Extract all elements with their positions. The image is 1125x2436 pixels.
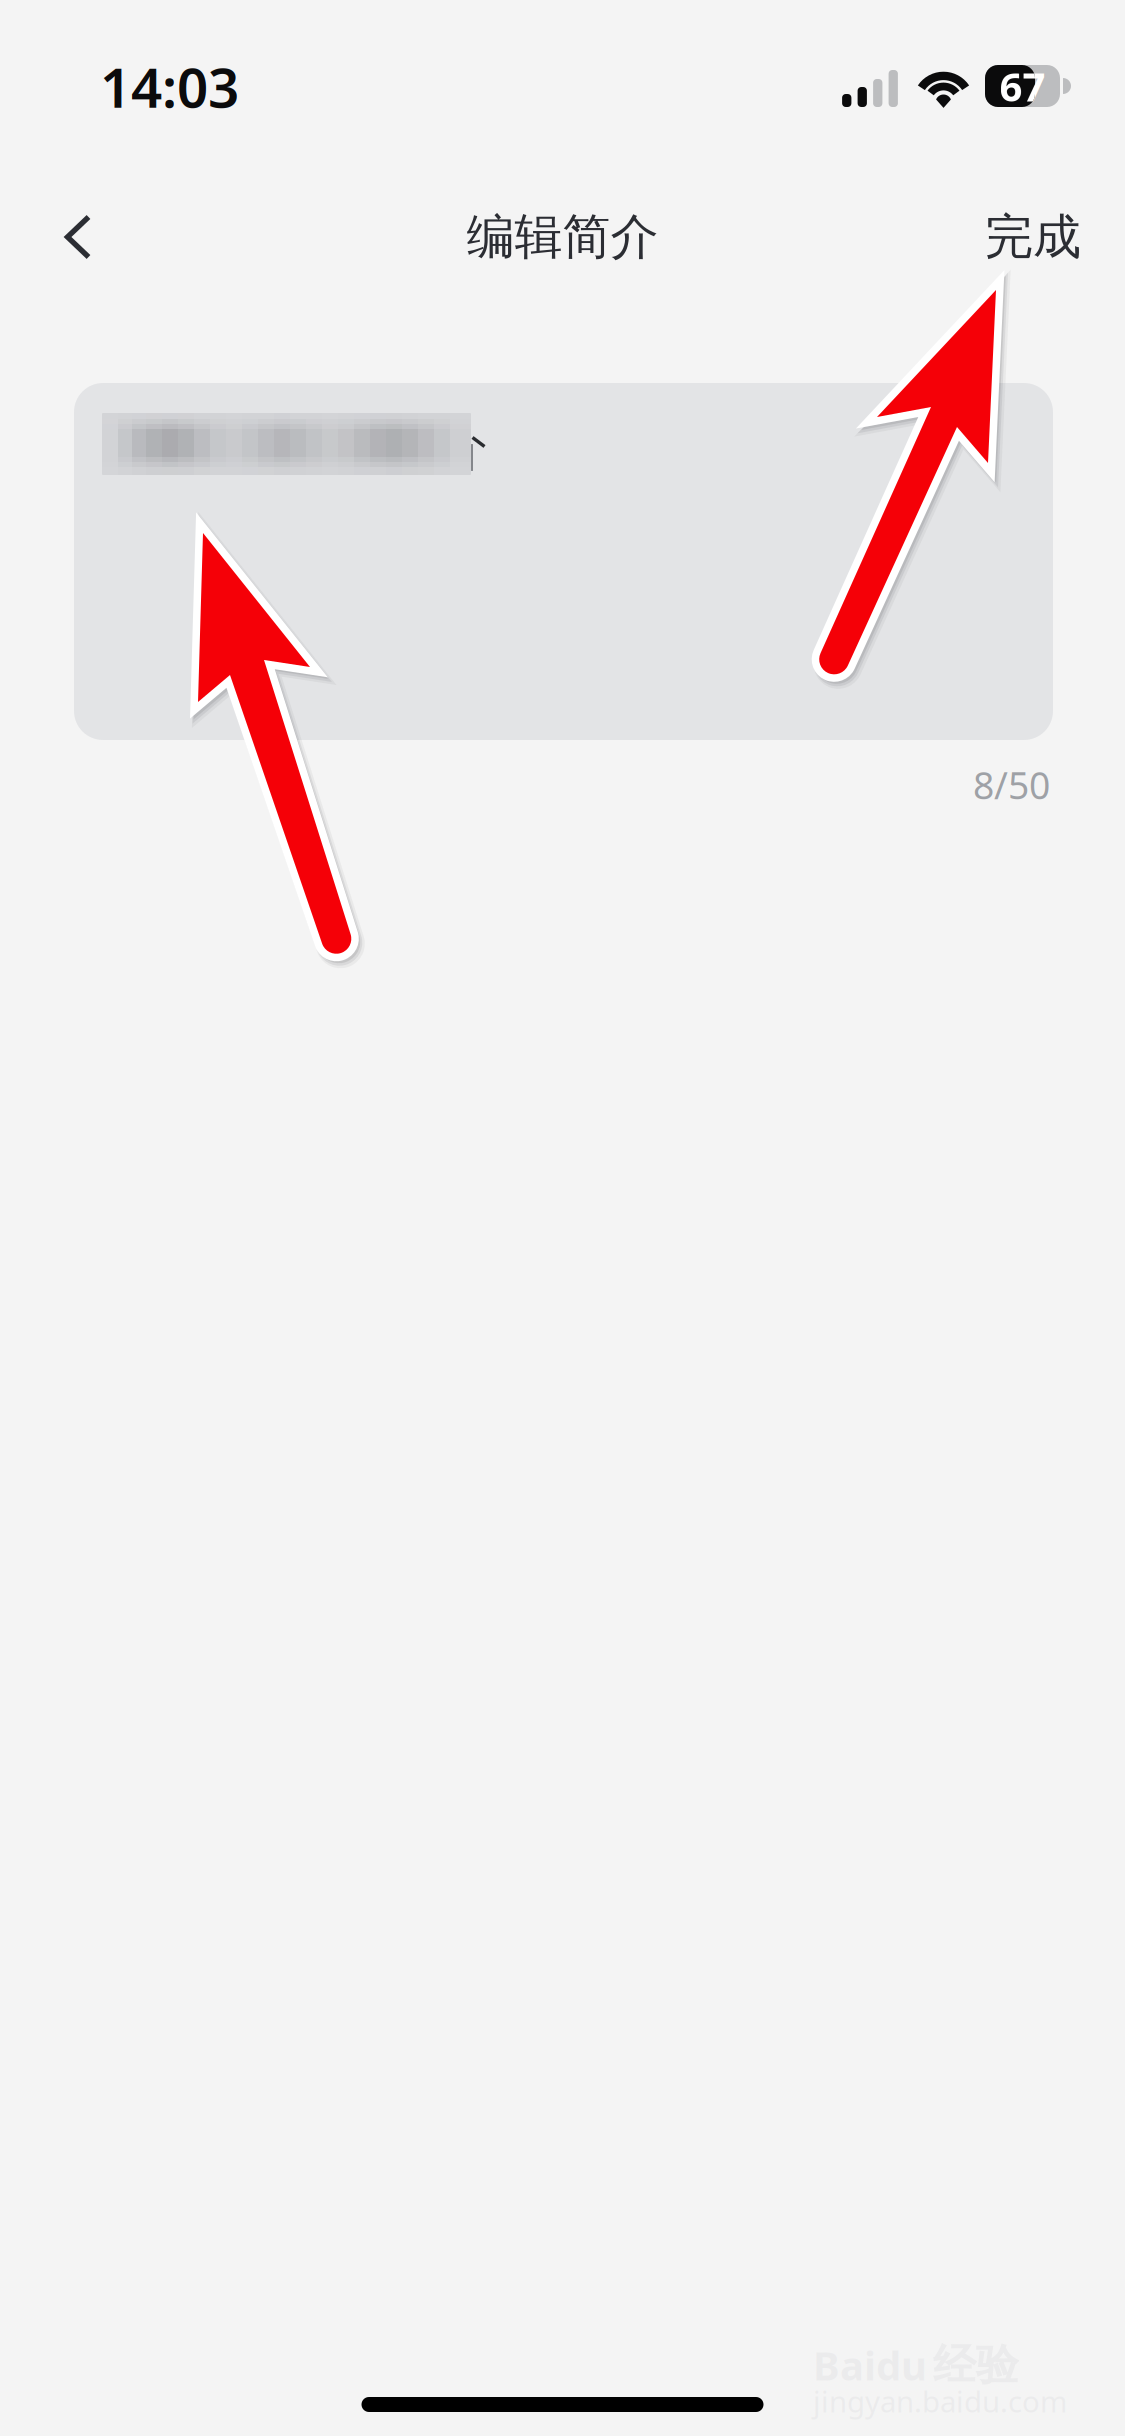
button[interactable]: 简介输入框: [74, 383, 1053, 740]
staticText: 8/50: [973, 760, 1050, 810]
staticText: 67: [999, 59, 1045, 112]
staticText: 经验: [933, 2339, 1019, 2391]
button[interactable]: 完成: [961, 187, 1105, 287]
staticText: Baidu: [813, 2338, 927, 2391]
staticText: 14:03: [100, 50, 239, 123]
staticText: 完成: [985, 207, 1081, 266]
staticText: 编辑简介: [466, 207, 658, 266]
button[interactable]: 返回: [29, 187, 127, 287]
staticText: 67: [999, 59, 1045, 112]
